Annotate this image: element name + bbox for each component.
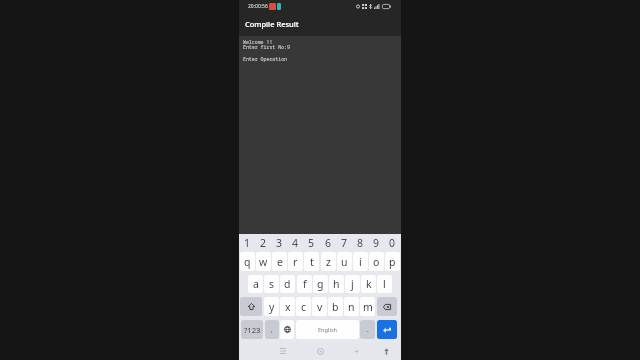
button[interactable]: n (344, 297, 359, 316)
button[interactable]: x (280, 297, 295, 316)
other: Change language (284, 326, 291, 333)
button[interactable]: Space (296, 320, 359, 339)
staticText: 9 (373, 236, 380, 250)
button[interactable]: f (297, 275, 312, 293)
button[interactable]: Shift (240, 297, 262, 316)
button[interactable]: Hide keyboard (377, 342, 395, 360)
staticText: n (348, 300, 355, 314)
staticText: f (303, 277, 307, 291)
button[interactable]: j (345, 275, 360, 293)
button[interactable]: l (377, 275, 392, 293)
staticText: k (366, 277, 372, 291)
staticText: 4 (292, 236, 299, 250)
button[interactable]: g (313, 275, 328, 293)
staticText: , (271, 325, 273, 334)
button[interactable]: 5 (304, 234, 319, 251)
staticText: r (293, 255, 298, 269)
button[interactable]: Recent apps (274, 342, 292, 360)
button[interactable]: r (288, 252, 303, 271)
button[interactable]: k (361, 275, 376, 293)
staticText: Compile Result (245, 19, 299, 29)
staticText: y (269, 300, 275, 314)
button[interactable]: p (385, 252, 400, 271)
staticText: 6 (325, 236, 332, 250)
button[interactable]: m (360, 297, 375, 316)
other: Shift (248, 303, 255, 310)
staticText: o (373, 255, 380, 269)
staticText: i (359, 255, 362, 269)
staticText: t (310, 255, 314, 269)
button[interactable]: 3 (272, 234, 287, 251)
button[interactable]: w (256, 252, 271, 271)
staticText: g (317, 277, 324, 291)
button[interactable]: y (264, 297, 279, 316)
staticText: p (389, 255, 396, 269)
staticText: ?123 (244, 325, 261, 335)
button[interactable]: a (248, 275, 263, 293)
button[interactable]: 6 (321, 234, 336, 251)
button[interactable]: Comma (265, 320, 279, 339)
staticText: 20:00:56 (248, 3, 268, 10)
staticText: l (383, 277, 386, 291)
staticText: z (326, 255, 331, 269)
staticText: x (285, 300, 291, 314)
button[interactable]: b (328, 297, 343, 316)
button[interactable]: Enter (377, 320, 397, 339)
staticText: 3 (276, 236, 283, 250)
staticText: 2 (260, 236, 267, 250)
button[interactable]: Back (347, 342, 365, 360)
button[interactable]: t (304, 252, 319, 271)
other: Backspace (383, 304, 391, 310)
staticText: c (301, 300, 307, 314)
button[interactable]: Symbols (241, 320, 263, 339)
staticText: 8 (357, 236, 364, 250)
button[interactable]: 4 (288, 234, 303, 251)
staticText: 5 (308, 236, 315, 250)
staticText: . (367, 325, 369, 334)
button[interactable]: u (337, 252, 352, 271)
button[interactable]: 7 (337, 234, 352, 251)
staticText: 7 (341, 236, 348, 250)
button[interactable]: Period (360, 320, 375, 339)
button[interactable]: 0 (385, 234, 400, 251)
button[interactable]: 9 (369, 234, 384, 251)
staticText: w (259, 255, 268, 269)
staticText: q (244, 255, 251, 269)
staticText: u (341, 255, 348, 269)
staticText: h (333, 277, 340, 291)
button[interactable]: s (264, 275, 279, 293)
staticText: 0 (389, 236, 396, 250)
staticText: b (332, 300, 339, 314)
staticText: a (253, 277, 259, 291)
button[interactable]: Home (311, 342, 329, 360)
button[interactable]: o (369, 252, 384, 271)
staticText: 1 (244, 236, 251, 250)
button[interactable]: h (329, 275, 344, 293)
button[interactable]: e (272, 252, 287, 271)
staticText: s (269, 277, 275, 291)
staticText: Welcome !! Enter first No:9 Enter Operat… (243, 39, 290, 63)
button[interactable]: 1 (240, 234, 255, 251)
button[interactable]: d (280, 275, 295, 293)
button[interactable]: 2 (256, 234, 271, 251)
button[interactable]: i (353, 252, 368, 271)
staticText: m (363, 300, 373, 314)
button[interactable]: c (296, 297, 311, 316)
staticText: v (317, 300, 323, 314)
staticText: d (284, 277, 291, 291)
button[interactable]: z (321, 252, 336, 271)
button[interactable]: v (312, 297, 327, 316)
button[interactable]: Change language (280, 320, 294, 339)
other: Enter (383, 327, 391, 333)
button[interactable]: q (240, 252, 255, 271)
button[interactable]: 8 (353, 234, 368, 251)
button[interactable]: Backspace (377, 297, 397, 316)
staticText: e (277, 255, 283, 269)
staticText: English (318, 326, 338, 334)
staticText: j (351, 277, 354, 291)
